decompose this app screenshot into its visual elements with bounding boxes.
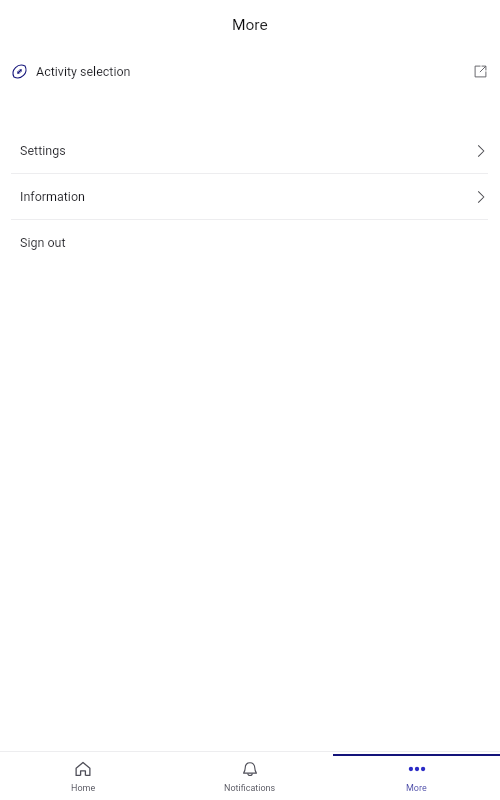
staticText: Activity selection bbox=[36, 64, 131, 79]
button[interactable]: Sign out bbox=[0, 220, 500, 266]
button[interactable]: Activity selection bbox=[0, 48, 500, 94]
staticText: More bbox=[406, 783, 427, 794]
button[interactable]: More bbox=[333, 751, 500, 800]
staticText: Information bbox=[20, 189, 85, 204]
button[interactable]: Open in new bbox=[462, 53, 498, 89]
staticText: Notifications bbox=[224, 783, 276, 794]
button[interactable]: Home bbox=[0, 751, 166, 800]
button[interactable]: Settings bbox=[0, 128, 500, 174]
button[interactable]: Information bbox=[0, 174, 500, 220]
staticText: Home bbox=[71, 783, 96, 794]
staticText: Sign out bbox=[20, 235, 66, 250]
staticText: More bbox=[232, 16, 268, 34]
button[interactable]: Notifications bbox=[166, 751, 333, 800]
staticText: Settings bbox=[20, 143, 66, 158]
